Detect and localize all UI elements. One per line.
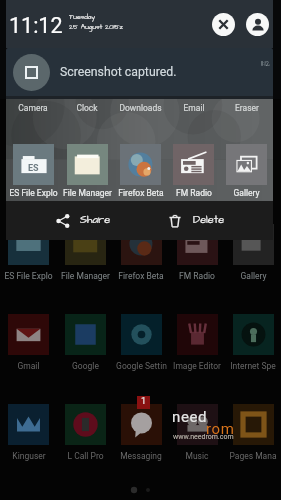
staticText: Email (183, 103, 205, 113)
staticText: Kinguser (12, 451, 46, 461)
staticText: Screenshot captured. (60, 65, 177, 79)
staticText: www.needrom.com (173, 433, 234, 441)
staticText: 25 August 2015z (69, 22, 123, 32)
staticText: 1 (141, 396, 147, 407)
button[interactable] (8, 404, 49, 445)
staticText: Internet Spe (230, 361, 276, 371)
staticText: FM Radio (176, 188, 212, 198)
button[interactable] (121, 224, 162, 265)
staticText: ES (28, 163, 39, 174)
staticText: Image Editor (173, 361, 221, 371)
button[interactable] (65, 224, 106, 265)
button[interactable] (167, 144, 220, 185)
button[interactable]: Account (246, 13, 269, 36)
staticText: Google Settin (116, 361, 167, 371)
staticText: Downloads (119, 103, 162, 113)
staticText: Gallery (240, 271, 267, 281)
staticText: 11:12 (261, 58, 270, 69)
staticText: Firefox Beta (118, 271, 164, 281)
staticText: File Manager (61, 271, 110, 281)
button[interactable] (121, 404, 162, 445)
staticText: ES File Explo (9, 188, 58, 198)
staticText: Music (185, 451, 209, 461)
button[interactable]: ES (6, 144, 60, 185)
staticText: Pages Mana (229, 451, 277, 461)
staticText: FM Radio (179, 271, 215, 281)
button[interactable]: Delete (168, 201, 225, 240)
staticText: rom (206, 420, 235, 438)
button[interactable] (233, 404, 274, 445)
staticText: L Call Pro (67, 451, 104, 461)
staticText: Google (72, 361, 99, 371)
button[interactable] (177, 314, 218, 355)
button[interactable]: Share (56, 201, 111, 240)
button[interactable] (233, 224, 274, 265)
staticText: ES File Explo (4, 271, 53, 281)
button[interactable] (233, 314, 274, 355)
button[interactable] (220, 144, 273, 185)
staticText: Gallery (233, 188, 260, 198)
staticText: Eraser (235, 103, 259, 113)
button[interactable] (8, 224, 49, 265)
staticText: Gmail (17, 361, 40, 371)
button[interactable] (121, 314, 162, 355)
staticText: Delete (193, 212, 225, 227)
button[interactable] (65, 404, 106, 445)
staticText: Firefox Beta (118, 188, 164, 198)
staticText: Tuesday (69, 12, 96, 22)
staticText: Messaging (120, 451, 162, 461)
button[interactable] (65, 314, 106, 355)
staticText: Camera (18, 103, 48, 113)
button[interactable]: Screenshot captured. (6, 48, 273, 96)
button[interactable]: Close (212, 13, 235, 36)
staticText: 11:12 (9, 13, 63, 38)
button[interactable] (60, 144, 114, 185)
button[interactable] (8, 314, 49, 355)
staticText: need (172, 408, 208, 426)
button[interactable] (177, 404, 218, 445)
staticText: File Manager (63, 188, 112, 198)
staticText: Share (80, 212, 111, 227)
staticText: Clock (76, 103, 98, 113)
button[interactable] (177, 224, 218, 265)
button[interactable] (114, 144, 167, 185)
